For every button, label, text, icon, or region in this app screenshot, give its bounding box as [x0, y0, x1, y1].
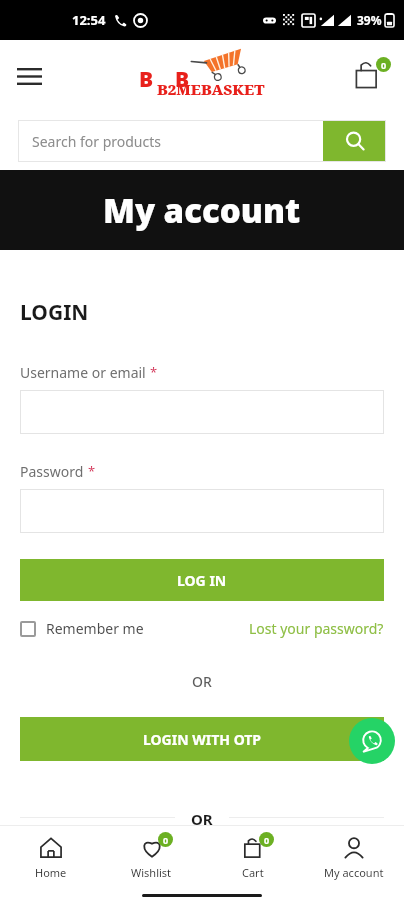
- button[interactable]: Home: [0, 826, 101, 890]
- staticText: Home: [35, 865, 67, 880]
- staticText: *: [88, 462, 96, 480]
- staticText: 39%: [357, 12, 382, 28]
- staticText: OR: [191, 809, 213, 825]
- button[interactable]: Search for products: [18, 120, 386, 162]
- staticText: LOG IN: [177, 571, 227, 590]
- button[interactable]: My account: [303, 826, 404, 890]
- staticText: Username or email: [20, 363, 146, 382]
- button[interactable]: Lost your password?: [249, 619, 384, 638]
- button[interactable]: 0: [202, 826, 303, 890]
- button[interactable]: Chat on WhatsApp: [349, 718, 395, 764]
- button[interactable]: [20, 489, 384, 533]
- staticText: B2MEBASKET: [157, 79, 265, 99]
- button[interactable]: Search: [323, 120, 386, 162]
- button[interactable]: LOG IN: [20, 559, 384, 601]
- staticText: My account: [103, 188, 301, 233]
- staticText: B: [139, 65, 154, 94]
- staticText: OR: [20, 672, 384, 691]
- staticText: Remember me: [46, 619, 144, 638]
- staticText: Password: [20, 462, 84, 481]
- staticText: B: [175, 65, 190, 94]
- staticText: 0: [163, 834, 169, 846]
- button[interactable]: Menu: [10, 57, 48, 95]
- staticText: Wishlist: [131, 865, 172, 880]
- staticText: Search for products: [32, 132, 323, 151]
- button[interactable]: [20, 390, 384, 434]
- staticText: 0: [264, 834, 270, 846]
- staticText: 0: [381, 59, 387, 71]
- button[interactable]: 0: [101, 826, 202, 890]
- button[interactable]: Cart: [350, 56, 390, 96]
- staticText: *: [150, 363, 158, 381]
- staticText: 12:54: [72, 11, 106, 29]
- button[interactable]: Remember me: [20, 619, 144, 638]
- staticText: My account: [324, 865, 384, 880]
- staticText: LOGIN: [20, 298, 89, 327]
- staticText: LOGIN WITH OTP: [143, 730, 262, 749]
- button[interactable]: LOGIN WITH OTP: [20, 717, 384, 761]
- staticText: Cart: [242, 865, 264, 880]
